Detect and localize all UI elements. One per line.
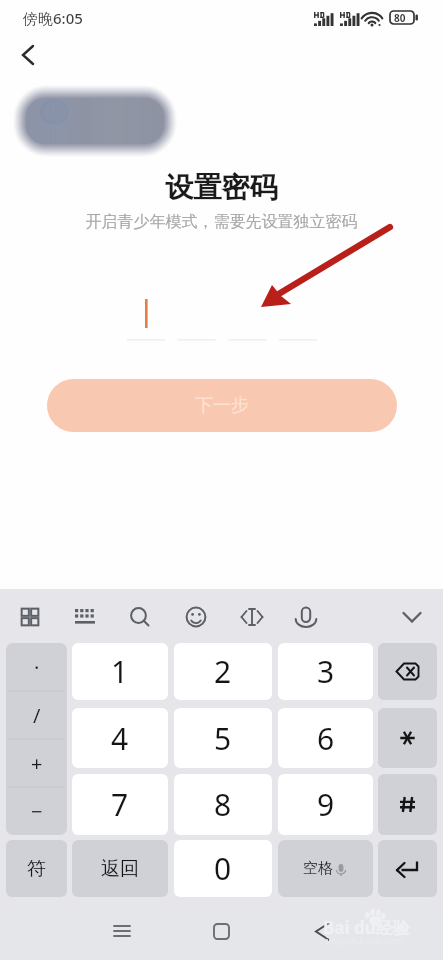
button[interactable]: 搜索: [120, 597, 160, 637]
button[interactable]: 6: [278, 708, 373, 768]
staticText: −: [31, 798, 43, 825]
staticText: Bai du经验: [323, 916, 410, 939]
staticText: 傍晚6:05: [23, 8, 83, 28]
button[interactable]: 返回: [72, 840, 168, 897]
staticText: 5: [214, 718, 232, 759]
button[interactable]: [378, 774, 437, 835]
staticText: 设置密码: [0, 170, 443, 205]
button[interactable]: [125, 294, 319, 346]
staticText: 9: [317, 784, 335, 825]
button[interactable]: 下一步: [47, 379, 397, 432]
button[interactable]: 2: [174, 643, 272, 700]
staticText: 8: [214, 784, 232, 825]
button[interactable]: 7: [72, 774, 168, 835]
staticText: 下一步: [195, 394, 249, 417]
button[interactable]: 9: [278, 774, 373, 835]
button[interactable]: 返回: [8, 38, 48, 78]
staticText: 符: [27, 857, 46, 881]
staticText: 1: [111, 651, 129, 692]
staticText: +: [31, 750, 43, 777]
button[interactable]: /: [6, 691, 67, 739]
button[interactable]: 1: [72, 643, 168, 700]
staticText: 4: [111, 718, 129, 759]
button[interactable]: [378, 840, 437, 897]
staticText: 3: [317, 651, 335, 692]
staticText: 6: [317, 718, 335, 759]
staticText: 开启青少年模式，需要先设置独立密码: [0, 212, 443, 232]
button[interactable]: −: [6, 787, 67, 835]
button[interactable]: 光标: [232, 597, 272, 637]
button[interactable]: [378, 708, 437, 768]
button[interactable]: 空格: [278, 840, 373, 897]
staticText: 返回: [101, 857, 139, 881]
button[interactable]: [378, 643, 437, 700]
button[interactable]: +: [6, 739, 67, 787]
button[interactable]: 最近任务: [102, 911, 142, 951]
staticText: 7: [111, 784, 129, 825]
button[interactable]: 键盘: [65, 597, 105, 637]
button[interactable]: 0: [174, 840, 272, 897]
button[interactable]: 符: [6, 840, 67, 897]
button[interactable]: 返回: [302, 911, 342, 951]
button[interactable]: 收起键盘: [392, 597, 432, 637]
staticText: 0: [214, 848, 232, 889]
button[interactable]: 主页: [201, 911, 241, 951]
button[interactable]: 3: [278, 643, 373, 700]
button[interactable]: 应用: [10, 597, 50, 637]
button[interactable]: ·: [6, 643, 67, 691]
button[interactable]: 语音输入: [286, 597, 326, 637]
button[interactable]: 8: [174, 774, 272, 835]
staticText: ·: [34, 654, 40, 681]
staticText: jingyan.baidu.com: [326, 934, 404, 946]
staticText: /: [33, 702, 41, 729]
staticText: 空格: [303, 859, 333, 878]
button[interactable]: 4: [72, 708, 168, 768]
button[interactable]: 5: [174, 708, 272, 768]
staticText: 2: [214, 651, 232, 692]
button[interactable]: 表情: [176, 597, 216, 637]
staticText: 80: [394, 11, 406, 25]
